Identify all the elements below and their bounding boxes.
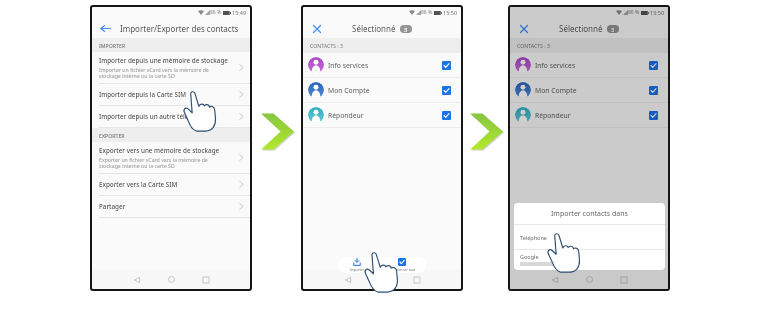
staticText: 15:49 — [232, 9, 247, 16]
staticText: Sélectionné — [352, 23, 396, 34]
staticText: Importer/Exporter des contacts — [120, 23, 239, 34]
button[interactable]: Back — [128, 271, 145, 288]
button[interactable]: Info services — [510, 53, 668, 77]
button[interactable]: Importer depuis la Carte SIM — [92, 84, 250, 105]
button[interactable]: Back — [339, 271, 356, 288]
button[interactable]: Home — [581, 271, 598, 288]
staticText: Importer contacts dans — [551, 209, 628, 219]
button[interactable]: Back — [546, 271, 563, 288]
staticText: Importer — [350, 267, 365, 272]
button[interactable]: Importer depuis une mémoire de stockage — [92, 52, 250, 83]
button[interactable]: Selected — [442, 86, 451, 95]
staticText: Importer depuis une mémoire de stockage — [99, 56, 228, 65]
button[interactable]: Importer depuis un autre téléphone — [92, 106, 250, 127]
button[interactable]: Selected — [649, 111, 658, 120]
staticText: 86 % — [628, 9, 640, 16]
staticText: Importer depuis un autre téléphone — [99, 112, 208, 121]
staticText: 3 — [611, 26, 615, 33]
staticText: 15:50 — [443, 9, 458, 16]
button[interactable]: Téléphone — [514, 225, 665, 249]
staticText: Importer un fichier vCard vers la mémoir… — [99, 66, 209, 80]
button[interactable]: Selected — [398, 258, 406, 266]
staticText: 86 % — [210, 9, 222, 16]
button[interactable]: Recents — [408, 271, 425, 288]
staticText: CONTACTS : 3 — [517, 42, 550, 49]
button[interactable]: Répondeur — [303, 103, 461, 127]
staticText: Répondeur — [535, 111, 571, 120]
staticText: Google — [520, 253, 539, 260]
staticText: Partager — [99, 202, 126, 211]
button[interactable]: Partager — [92, 196, 250, 217]
staticText: Sélectionner tout — [388, 267, 416, 272]
staticText: 3 — [404, 26, 408, 33]
staticText: Téléphone — [520, 234, 547, 241]
button[interactable]: Mon Compte — [303, 78, 461, 102]
staticText: Info services — [328, 61, 369, 70]
button[interactable]: Home — [163, 271, 180, 288]
button[interactable]: Selected — [649, 61, 658, 70]
button[interactable]: Exporter vers la Carte SIM — [92, 174, 250, 195]
button[interactable]: Selected — [649, 86, 658, 95]
staticText: Importer depuis la Carte SIM — [99, 90, 187, 99]
staticText: Exporter vers la Carte SIM — [99, 180, 178, 189]
button[interactable]: Selected — [380, 258, 424, 272]
staticText: IMPORTER — [99, 42, 126, 49]
button[interactable]: Back — [99, 22, 112, 35]
button[interactable]: Info services — [303, 53, 461, 77]
button[interactable]: Mon Compte — [510, 78, 668, 102]
button[interactable]: Google — [514, 250, 665, 270]
button[interactable]: Importer — [340, 258, 374, 272]
staticText: Répondeur — [328, 111, 364, 120]
staticText: Mon Compte — [535, 86, 577, 95]
staticText: CONTACTS : 3 — [310, 42, 343, 49]
button[interactable]: Recents — [615, 271, 632, 288]
staticText: Info services — [535, 61, 576, 70]
staticText: 15:50 — [650, 9, 665, 16]
staticText: 86 % — [421, 9, 433, 16]
button[interactable]: Selected — [442, 111, 451, 120]
button[interactable]: Recents — [197, 271, 214, 288]
button[interactable]: Close — [310, 22, 323, 35]
button[interactable]: Close — [517, 22, 530, 35]
staticText: EXPORTER — [99, 132, 125, 139]
button[interactable]: Répondeur — [510, 103, 668, 127]
button[interactable]: Selected — [442, 61, 451, 70]
staticText: Exporter vers une mémoire de stockage — [99, 146, 220, 155]
staticText: Sélectionné — [559, 23, 603, 34]
staticText: Exporter un fichier vCard vers la mémoir… — [99, 156, 208, 170]
button[interactable]: Exporter vers une mémoire de stockage — [92, 142, 250, 173]
staticText: Mon Compte — [328, 86, 370, 95]
